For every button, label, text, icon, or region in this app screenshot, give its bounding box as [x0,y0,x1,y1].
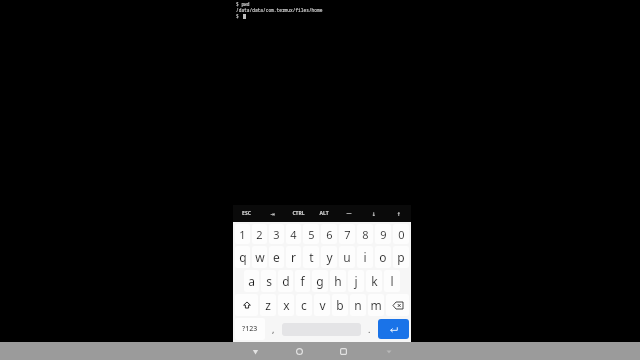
button[interactable]: CTRL [285,205,311,222]
button[interactable]: 7 [339,224,355,244]
staticText: 7 [344,227,351,242]
staticText: 3 [273,227,280,242]
staticText: 9 [380,227,387,242]
button[interactable]: q [235,246,250,268]
button[interactable]: — [336,205,361,222]
staticText: 4 [290,227,297,242]
staticText: r [291,249,296,265]
button[interactable]: ?123 [235,318,265,340]
button[interactable]: p [393,246,409,268]
button[interactable]: 3 [269,224,284,244]
staticText: m [370,297,382,313]
button[interactable]: 9 [375,224,391,244]
staticText: d [282,273,290,289]
button[interactable]: ESC [233,205,259,222]
button[interactable]: ⇥ [259,205,285,222]
button[interactable]: e [269,246,284,268]
button[interactable]: l [384,270,400,292]
staticText: c [301,297,307,313]
staticText: /data/data/com.termux/files/home [236,7,323,13]
staticText: f [300,273,305,289]
staticText: j [354,273,358,289]
button[interactable]: 5 [303,224,319,244]
button[interactable]: a [244,270,259,292]
staticText: y [326,249,333,265]
staticText: — [346,210,352,217]
staticText: 0 [398,227,405,242]
staticText: ?123 [242,324,258,334]
staticText: v [319,297,326,313]
button[interactable]: y [321,246,337,268]
button[interactable]: 1 [235,224,250,244]
staticText: 2 [256,227,263,242]
staticText: o [379,249,387,265]
staticText: b [336,297,344,313]
button[interactable]: j [348,270,364,292]
button[interactable]: k [366,270,382,292]
button[interactable]: 0 [393,224,409,244]
staticText: ↑ [396,211,401,217]
staticText: CTRL [292,210,305,217]
staticText: . [368,323,371,335]
button[interactable]: Shift [235,294,258,316]
button[interactable]: , [266,318,281,340]
staticText: x [283,297,290,313]
button[interactable]: 6 [321,224,337,244]
button[interactable]: o [375,246,391,268]
button[interactable]: t [303,246,319,268]
button[interactable]: 2 [252,224,267,244]
staticText: p [397,249,405,265]
staticText: h [334,273,342,289]
button[interactable]: Recents [321,342,366,360]
staticText: ⇥ [270,211,275,217]
button[interactable]: g [312,270,328,292]
staticText: 5 [308,227,315,242]
staticText: 8 [362,227,369,242]
button[interactable]: v [314,294,330,316]
button[interactable]: n [350,294,366,316]
button[interactable]: r [286,246,301,268]
staticText: i [363,249,367,265]
staticText: g [316,273,324,289]
button[interactable]: . [362,318,377,340]
button[interactable]: i [357,246,373,268]
button[interactable]: w [252,246,267,268]
button[interactable]: Back [233,342,277,360]
staticText: w [255,249,265,265]
staticText: n [354,297,362,313]
button[interactable]: z [260,294,276,316]
staticText: t [309,249,314,265]
button[interactable]: Enter [378,319,409,339]
button[interactable]: c [296,294,312,316]
staticText: s [266,273,272,289]
button[interactable]: h [330,270,346,292]
button[interactable]: s [261,270,276,292]
button[interactable]: f [295,270,310,292]
staticText: l [390,273,394,289]
staticText: ESC [242,210,251,217]
button[interactable]: ALT [311,205,336,222]
button[interactable]: Home [277,342,321,360]
button[interactable]: 8 [357,224,373,244]
button[interactable]: u [339,246,355,268]
button[interactable]: 4 [286,224,301,244]
button[interactable]: ↓ [361,205,386,222]
button[interactable]: ↑ [386,205,411,222]
button[interactable]: m [368,294,384,316]
staticText: a [248,273,255,289]
staticText: k [371,273,378,289]
staticText: z [265,297,271,313]
staticText: $ [236,13,242,19]
staticText: ↓ [371,211,376,217]
button[interactable]: Backspace [386,294,409,316]
staticText: u [343,249,351,265]
staticText: q [239,249,247,265]
button[interactable]: x [278,294,294,316]
staticText: , [272,323,275,335]
staticText: 6 [326,227,333,242]
staticText: ALT [319,210,329,217]
button[interactable]: b [332,294,348,316]
button[interactable]: d [278,270,293,292]
